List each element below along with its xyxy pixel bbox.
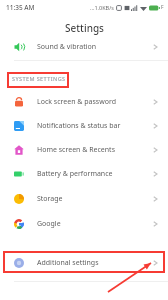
- staticText: 11:35 AM: [6, 3, 35, 12]
- staticText: ...1.0KB/s: [90, 4, 114, 11]
- button[interactable]: Battery & performance: [0, 164, 168, 183]
- staticText: Google: [37, 219, 61, 229]
- button[interactable]: Notifications & status bar: [0, 116, 168, 135]
- button[interactable]: Sound & vibration: [0, 37, 168, 56]
- staticText: Battery & performance: [37, 169, 113, 179]
- button[interactable]: Storage: [0, 189, 168, 208]
- staticText: Settings: [65, 21, 104, 35]
- button[interactable]: Home screen & Recents: [0, 140, 168, 159]
- staticText: Notifications & status bar: [37, 121, 121, 131]
- staticText: Home screen & Recents: [37, 145, 116, 155]
- staticText: Additional settings: [37, 258, 99, 268]
- staticText: Storage: [37, 194, 63, 204]
- staticText: SYSTEM SETTINGS: [12, 75, 66, 82]
- staticText: Sound & vibration: [37, 42, 97, 52]
- staticText: Lock screen & password: [37, 97, 117, 107]
- staticText: F: [161, 4, 164, 11]
- button[interactable]: Lock screen & password: [0, 92, 168, 111]
- button[interactable]: Google: [0, 214, 168, 233]
- button[interactable]: Additional settings: [0, 253, 168, 272]
